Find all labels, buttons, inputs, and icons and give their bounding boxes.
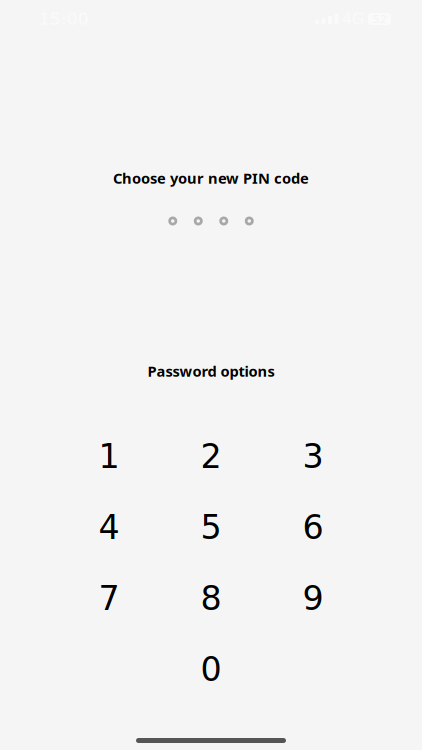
staticText: 8 [200, 579, 221, 618]
staticText: Choose your new PIN code [113, 168, 309, 188]
button[interactable]: 5 [160, 492, 262, 563]
button[interactable]: 0 [160, 634, 262, 705]
button[interactable]: 4 [58, 492, 160, 563]
button[interactable]: 7 [58, 563, 160, 634]
staticText: 4 [98, 508, 119, 547]
staticText: 2 [200, 437, 221, 476]
staticText: 6 [302, 508, 323, 547]
button[interactable]: 8 [160, 563, 262, 634]
button[interactable]: 1 [58, 421, 160, 492]
staticText: 9 [302, 579, 323, 618]
button[interactable]: 3 [262, 421, 364, 492]
staticText: 7 [98, 579, 119, 618]
button[interactable]: Password options [0, 361, 422, 381]
staticText: 1 [98, 437, 119, 476]
staticText: 3 [302, 437, 323, 476]
button[interactable]: 9 [262, 563, 364, 634]
button[interactable]: 2 [160, 421, 262, 492]
button[interactable]: 6 [262, 492, 364, 563]
staticText: 0 [200, 650, 221, 689]
staticText: Password options [147, 361, 274, 381]
staticText: 5 [200, 508, 221, 547]
